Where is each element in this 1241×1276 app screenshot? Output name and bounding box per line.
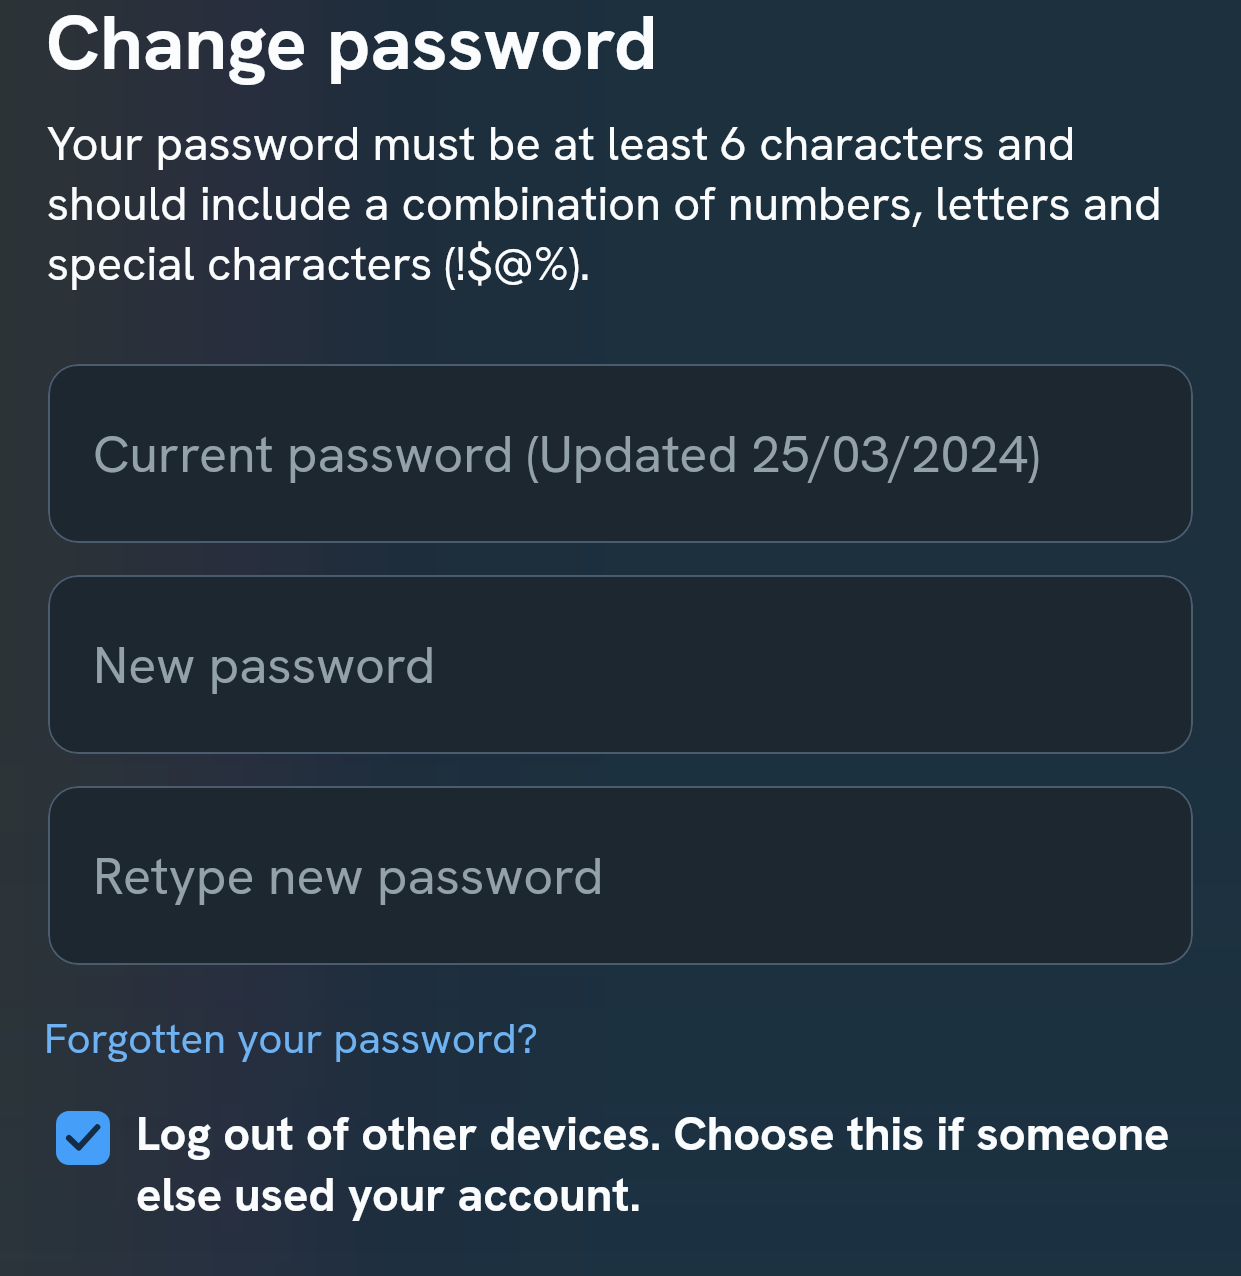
button[interactable]: Log out of other devices, checked bbox=[56, 1103, 1193, 1225]
button[interactable]: Forgotten your password? bbox=[44, 1011, 539, 1066]
other: Log out of other devices, checked bbox=[56, 1111, 110, 1165]
staticText: Your password must be at least 6 charact… bbox=[47, 113, 1196, 294]
button[interactable]: New password bbox=[48, 575, 1193, 754]
staticText: New password bbox=[93, 631, 436, 699]
staticText: Change password bbox=[46, 0, 658, 92]
staticText: Current password (Updated 25/03/2024) bbox=[93, 420, 1040, 488]
button[interactable]: Current password (Updated 25/03/2024) bbox=[48, 364, 1193, 543]
staticText: Log out of other devices. Choose this if… bbox=[136, 1103, 1193, 1225]
button[interactable]: Retype new password bbox=[48, 786, 1193, 965]
staticText: Retype new password bbox=[93, 842, 604, 910]
